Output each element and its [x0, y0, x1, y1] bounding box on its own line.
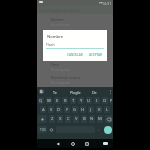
staticText: Entre el punto de acceso [39, 8, 81, 13]
button[interactable]: P [110, 97, 112, 104]
staticText: 14:31 [102, 1, 112, 6]
staticText: T [72, 98, 75, 104]
button[interactable]: E [54, 97, 60, 104]
button[interactable]: H [80, 106, 86, 113]
staticText: U [87, 98, 91, 104]
staticText: No configurado [51, 23, 71, 27]
button[interactable]: O [102, 97, 108, 104]
staticText: ?123 [40, 128, 46, 132]
staticText: Q [39, 98, 43, 104]
button[interactable]: V [73, 115, 79, 123]
button[interactable]: W [46, 97, 52, 104]
staticText: Nombre de usuario [51, 76, 81, 80]
staticText: ⋮ [108, 89, 112, 94]
button[interactable]: Z [49, 115, 55, 123]
staticText: A [42, 107, 45, 113]
button[interactable]: Home [71, 142, 75, 146]
staticText: ▾▾ [99, 1, 103, 5]
button[interactable]: B [81, 115, 87, 123]
button[interactable]: K [96, 106, 102, 113]
staticText: CANCELAR [67, 53, 83, 57]
button[interactable]: Q [38, 97, 44, 104]
staticText: I [96, 98, 98, 104]
button[interactable]: CANCELAR [66, 52, 84, 58]
staticText: Y [80, 98, 83, 104]
button[interactable]: C [65, 115, 71, 123]
staticText: . [98, 127, 100, 132]
staticText: L [106, 107, 109, 113]
button[interactable]: Nombre de usuario [37, 74, 113, 86]
staticText: X [59, 116, 62, 122]
button[interactable]: X [57, 115, 63, 123]
staticText: K [98, 107, 101, 113]
staticText: N [90, 116, 94, 122]
button[interactable]: Enter [104, 126, 112, 134]
staticText: D [57, 107, 61, 113]
button[interactable]: J [88, 106, 94, 113]
staticText: B [83, 116, 86, 122]
staticText: ACEPTAR [89, 53, 103, 57]
staticText: W [47, 98, 51, 104]
staticText: G [73, 107, 77, 113]
staticText: No configurado [51, 68, 71, 72]
button[interactable]: ACEPTAR [88, 52, 104, 58]
button[interactable]: A [40, 106, 46, 113]
button[interactable]: Back [56, 142, 60, 146]
button[interactable]: Backspace [105, 115, 112, 123]
button[interactable]: Emoji [50, 126, 53, 133]
staticText: C [67, 116, 70, 122]
button[interactable]: G [72, 106, 78, 113]
button[interactable]: Shift [38, 115, 47, 123]
staticText: J [90, 107, 92, 113]
staticText: Z [51, 116, 54, 122]
staticText: H [81, 107, 85, 113]
button[interactable]: Google [39, 89, 44, 94]
button[interactable]: F [64, 106, 70, 113]
staticText: Plugle [70, 90, 81, 95]
staticText: Flash [51, 63, 59, 67]
staticText: E [56, 98, 59, 104]
button[interactable]: M [97, 115, 103, 123]
staticText: Te [53, 90, 57, 95]
staticText: De [92, 90, 97, 95]
staticText: F [66, 107, 69, 113]
button[interactable]: ?123 [38, 126, 47, 133]
staticText: R [64, 98, 67, 104]
staticText: P [110, 98, 112, 104]
staticText: O [103, 98, 107, 104]
staticText: G [40, 90, 43, 94]
staticText: V [75, 116, 78, 122]
button[interactable]: U [86, 97, 92, 104]
staticText: Flash [46, 42, 55, 47]
staticText: M [98, 116, 102, 122]
button[interactable]: Recents [85, 142, 89, 146]
button[interactable]: N [89, 115, 95, 123]
button[interactable]: I [94, 97, 100, 104]
button[interactable]: Y [78, 97, 84, 104]
button[interactable]: R [62, 97, 68, 104]
staticText: S [50, 107, 53, 113]
staticText: Nombre [51, 18, 64, 22]
button[interactable]: S [48, 106, 54, 113]
staticText: Nombre [47, 34, 64, 40]
button[interactable]: Period [98, 126, 100, 133]
staticText: No configurado [51, 81, 71, 85]
button[interactable]: D [56, 106, 62, 113]
button[interactable]: Switch keyboard [103, 142, 108, 145]
button[interactable]: T [70, 97, 76, 104]
button[interactable]: L [104, 106, 110, 113]
